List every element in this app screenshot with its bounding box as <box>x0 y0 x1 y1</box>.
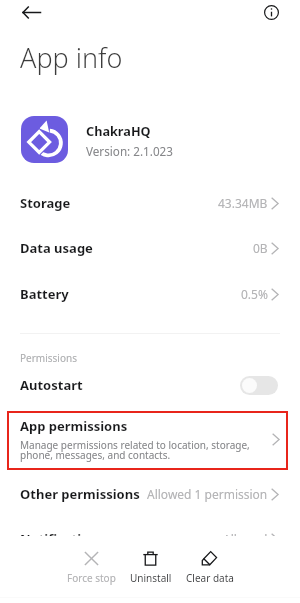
staticText: Autostart <box>20 376 83 394</box>
staticText: Force stop <box>67 571 116 585</box>
staticText: Manage permissions related to location, … <box>20 438 250 452</box>
staticText: 0B <box>253 240 268 256</box>
button[interactable]: Battery <box>0 272 300 316</box>
button[interactable]: Uninstall <box>121 536 180 585</box>
button[interactable]: Force stop <box>62 536 121 585</box>
staticText: Version: 2.1.023 <box>86 143 173 159</box>
staticText: Other permissions <box>20 485 140 503</box>
button[interactable]: About this app <box>259 0 283 24</box>
button[interactable]: Data usage <box>0 226 300 270</box>
staticText: 43.34MB <box>218 195 268 211</box>
staticText: Battery <box>20 285 69 303</box>
staticText: Clear data <box>186 571 234 585</box>
button[interactable]: Back <box>19 0 43 24</box>
staticText: 0.5% <box>241 286 268 302</box>
staticText: Data usage <box>20 239 93 257</box>
button[interactable]: Notifications <box>0 517 300 561</box>
staticText: ChakraHQ <box>86 122 151 139</box>
button[interactable]: Autostart <box>0 370 300 400</box>
button[interactable]: Clear data <box>180 536 239 585</box>
staticText: Storage <box>20 194 71 212</box>
button[interactable]: Other permissions <box>0 472 300 516</box>
staticText: Allowed <box>223 531 268 547</box>
staticText: Notifications <box>20 530 105 548</box>
button[interactable]: App permissions <box>9 413 286 468</box>
staticText: phone, messages, and contacts. <box>20 448 171 462</box>
button[interactable]: Storage <box>0 181 300 225</box>
staticText: App permissions <box>20 417 128 435</box>
staticText: App info <box>20 39 123 76</box>
staticText: Permissions <box>20 351 77 365</box>
staticText: Allowed 1 permission <box>147 486 268 502</box>
staticText: Uninstall <box>130 571 172 585</box>
